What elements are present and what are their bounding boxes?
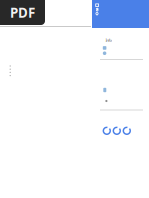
button[interactable]: Media — [92, 0, 149, 28]
staticText: PDF — [10, 4, 35, 21]
button[interactable]: Rotate — [113, 127, 121, 135]
button[interactable]: Rotate — [123, 127, 131, 135]
staticText: Info — [105, 37, 111, 43]
button[interactable]: Rotate — [103, 127, 111, 135]
button[interactable]: PDF — [0, 0, 45, 25]
